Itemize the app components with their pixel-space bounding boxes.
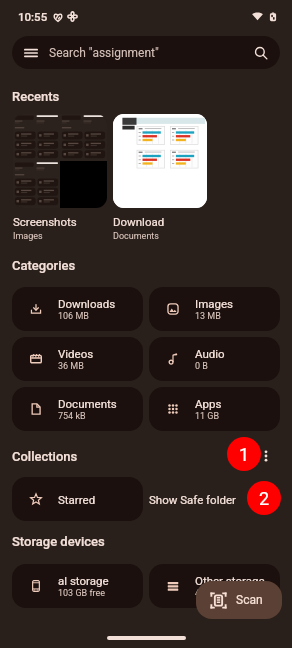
staticText: Downloads bbox=[58, 297, 116, 310]
button[interactable]: Menu bbox=[12, 36, 280, 69]
staticText: Collections bbox=[12, 449, 78, 464]
staticText: Images bbox=[195, 297, 233, 310]
staticText: Download bbox=[113, 215, 165, 228]
staticText: Show Safe folder bbox=[149, 493, 236, 506]
staticText: Categories bbox=[12, 258, 76, 273]
button[interactable]: al storage bbox=[12, 564, 143, 608]
other: Menu bbox=[24, 46, 38, 60]
button[interactable]: Scan bbox=[196, 581, 282, 619]
staticText: 36 MB bbox=[58, 361, 84, 372]
staticText: Videos bbox=[58, 347, 94, 360]
staticText: Documents bbox=[58, 397, 117, 410]
other: Search bbox=[254, 46, 268, 60]
button[interactable]: Videos bbox=[12, 337, 143, 381]
staticText: 103 GB free bbox=[58, 588, 106, 599]
button[interactable]: Show Safe folder bbox=[149, 477, 280, 521]
staticText: 0 B bbox=[195, 361, 208, 372]
button[interactable]: More options bbox=[254, 444, 278, 468]
staticText: Other storage bbox=[195, 574, 265, 587]
staticText: Documents bbox=[113, 231, 159, 242]
staticText: 1 bbox=[239, 444, 250, 465]
staticText: Images bbox=[13, 231, 43, 242]
staticText: 47 GB free bbox=[195, 588, 237, 599]
staticText: 754 kB bbox=[58, 411, 86, 422]
staticText: Audio bbox=[195, 347, 225, 360]
button[interactable]: Images bbox=[149, 287, 280, 331]
staticText: Storage devices bbox=[12, 534, 105, 549]
staticText: Screenshots bbox=[13, 215, 77, 228]
button[interactable]: Audio bbox=[149, 337, 280, 381]
staticText: Apps bbox=[195, 397, 222, 410]
staticText: al storage bbox=[58, 574, 109, 587]
staticText: 2 bbox=[259, 488, 270, 509]
staticText: Scan bbox=[236, 593, 263, 607]
staticText: Search "assignment" bbox=[49, 46, 159, 60]
staticText: Starred bbox=[58, 493, 96, 506]
staticText: 10:55 bbox=[18, 10, 48, 23]
button[interactable] bbox=[13, 114, 107, 208]
staticText: 13 MB bbox=[195, 311, 221, 322]
button[interactable]: Starred bbox=[12, 477, 143, 521]
button[interactable]: Apps bbox=[149, 387, 280, 431]
staticText: 106 MB bbox=[58, 311, 89, 322]
button[interactable]: Downloads bbox=[12, 287, 143, 331]
staticText: 11 GB bbox=[195, 411, 220, 422]
staticText: Recents bbox=[12, 89, 60, 104]
button[interactable]: Other storage bbox=[149, 564, 280, 608]
button[interactable] bbox=[113, 114, 207, 208]
button[interactable]: Documents bbox=[12, 387, 143, 431]
